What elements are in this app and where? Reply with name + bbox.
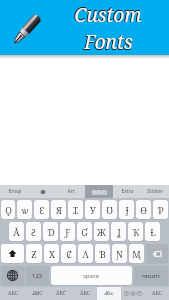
staticText: ÄBC [80,290,90,297]
staticText: Fonts [84,29,133,55]
staticText: Ʊ [106,204,113,216]
staticText: Extra [121,188,134,195]
staticText: Emoji [8,188,22,195]
staticText: Ɪ [73,204,78,216]
staticText: Fonts [84,30,133,55]
staticText: Ǎ [13,226,20,238]
button[interactable]: Ꙅ [26,222,41,241]
button[interactable]: Ҡ [128,222,143,241]
staticText: Custom [74,2,142,28]
button[interactable]: Ɛ [34,200,49,219]
button[interactable]: ☻ [29,185,57,198]
staticText: Ө [140,204,147,216]
staticText: Sticker [147,188,163,195]
staticText: Ʌ [82,248,89,260]
staticText: ABC [8,290,18,297]
staticText: Custom [74,2,142,28]
button[interactable]: Backspace [146,244,168,263]
button[interactable]: 123 [26,266,49,285]
button[interactable]: space [51,266,132,285]
button[interactable]: Shift [1,244,24,263]
staticText: У [90,204,96,216]
staticText: Fonts [84,29,133,55]
button[interactable]: ABC [145,287,169,300]
button[interactable]: Ⓐ:Ⓑ:Ⓒ [121,287,145,300]
button[interactable]: Ʝ [111,222,126,241]
button[interactable]: Ӎ [129,244,144,263]
button[interactable]: X [44,244,59,263]
staticText: Ʝ [117,226,121,238]
staticText: Ǫ [5,204,12,216]
staticText: Fonts [83,29,132,55]
button[interactable]: return [134,266,168,285]
button[interactable]: Sticker [141,185,169,198]
staticText: ☻ [40,189,46,195]
staticText: ABC [152,290,162,297]
button[interactable]: ᏗᏰፈ [97,287,121,300]
button[interactable]: Art [57,185,85,198]
button[interactable]: Я [51,200,66,219]
staticText: X [49,248,55,260]
button[interactable]: ÄBC [73,287,97,300]
button[interactable]: Ɪ [68,200,83,219]
staticText: Custom [73,1,141,27]
button[interactable]: Ө [136,200,151,219]
staticText: Art [67,188,75,195]
button[interactable]: Ɗ [43,222,58,241]
button[interactable]: Ж [94,222,109,241]
staticText: return [142,272,160,280]
staticText: 123 [32,272,43,280]
staticText: ⓐⓑⓒ [92,189,107,195]
button[interactable]: Ɲ [112,244,127,263]
staticText: Ƥ [157,204,164,216]
staticText: Ɛ [39,204,45,216]
button[interactable]: Ƶ [26,244,42,263]
other: Fountain pen [5,5,51,51]
staticText: Custom [74,2,142,28]
staticText: Fonts [84,29,133,55]
staticText: Ƶ [31,248,37,260]
button[interactable]: ᎯᏰᏟ [25,287,49,300]
staticText: Ƚ [150,226,156,238]
button[interactable]: Ʌ [78,244,93,263]
button[interactable]: Ƥ [153,200,168,219]
staticText: ᏗᏰፈ [104,291,114,296]
button[interactable]: ABC [0,287,25,300]
staticText: Custom [73,2,141,28]
staticText: ÁḂĈ [56,290,66,297]
button[interactable]: Emoji [0,185,29,198]
staticText: Ⓐ:Ⓑ:Ⓒ [124,290,142,297]
button[interactable]: Change keyboard [1,266,24,285]
button[interactable]: Ʊ [102,200,117,219]
staticText: Custom [73,2,141,28]
staticText: Ɠ [81,226,88,238]
staticText: Ӎ [132,248,141,260]
staticText: Fonts [84,30,133,55]
button[interactable]: ÁḂĈ [49,287,73,300]
button[interactable]: Extra [113,185,141,198]
button[interactable]: Ǫ [1,200,15,219]
button[interactable]: Ȼ [61,244,76,263]
button[interactable]: Ƚ [145,222,160,241]
button[interactable]: У [85,200,100,219]
staticText: Ҡ [132,226,140,238]
staticText: space [83,272,100,280]
button[interactable]: Ǎ [9,222,24,241]
staticText: Ƒ [64,226,71,238]
staticText: Ɉ [125,204,129,216]
button[interactable]: Ƒ [60,222,75,241]
button[interactable]: Ɓ [95,244,110,263]
staticText: ѡ [21,204,29,216]
staticText: Ɓ [99,248,106,260]
staticText: Fonts [83,30,132,55]
staticText: Ж [97,226,106,238]
button[interactable]: ⓐⓑⓒ [85,185,113,198]
button[interactable]: Ɉ [119,200,134,219]
staticText: Custom [74,1,142,27]
staticText: Custom [74,1,142,27]
button[interactable]: ѡ [17,200,32,219]
button[interactable]: Ɠ [77,222,92,241]
staticText: Custom [74,2,142,28]
staticText: Ꙅ [31,226,36,238]
staticText: Я [56,204,62,216]
